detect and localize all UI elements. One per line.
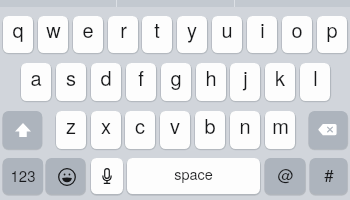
button[interactable]: Shift [3, 111, 42, 149]
button[interactable]: c [125, 111, 155, 149]
staticText: a [30, 63, 42, 92]
staticText: r [120, 16, 127, 44]
button[interactable]: d [91, 63, 121, 101]
staticText: b [204, 111, 216, 140]
button[interactable]: j [230, 63, 260, 101]
button[interactable]: 123 [3, 158, 43, 194]
staticText: c [135, 111, 145, 140]
staticText: y [187, 16, 197, 44]
staticText: u [221, 16, 233, 44]
button[interactable]: x [91, 111, 121, 149]
button[interactable]: w [38, 16, 68, 53]
staticText: v [170, 111, 180, 140]
staticText: 123 [10, 165, 36, 186]
staticText: z [66, 111, 76, 140]
button[interactable]: v [160, 111, 190, 149]
button[interactable]: u [212, 16, 242, 53]
button[interactable]: o [282, 16, 312, 53]
button[interactable]: e [73, 16, 103, 53]
staticText: n [239, 111, 251, 140]
button[interactable]: q [3, 16, 33, 53]
staticText: t [154, 16, 160, 44]
staticText: d [100, 63, 112, 92]
staticText: m [272, 111, 289, 140]
button[interactable]: f [126, 63, 156, 101]
button[interactable]: h [196, 63, 226, 101]
button[interactable]: b [195, 111, 225, 149]
button[interactable]: y [177, 16, 207, 53]
button[interactable]: Dictate [91, 158, 123, 194]
staticText: l [313, 63, 318, 92]
button[interactable]: l [300, 63, 330, 101]
button[interactable]: g [161, 63, 191, 101]
staticText: k [275, 63, 285, 92]
button[interactable]: r [108, 16, 138, 53]
staticText: x [101, 111, 111, 140]
button[interactable]: Emoji keyboard [46, 158, 85, 194]
staticText: space [174, 163, 213, 184]
staticText: s [66, 63, 76, 92]
button[interactable]: space [127, 158, 260, 194]
button[interactable]: @ [265, 158, 305, 194]
staticText: h [205, 63, 217, 92]
staticText: p [326, 16, 338, 44]
button[interactable]: a [21, 63, 51, 101]
staticText: q [12, 16, 24, 44]
button[interactable]: m [265, 111, 295, 149]
staticText: g [170, 63, 182, 92]
staticText: e [82, 16, 94, 44]
button[interactable]: Backspace [309, 111, 347, 149]
staticText: f [138, 63, 144, 92]
button[interactable]: p [317, 16, 347, 53]
staticText: w [46, 16, 61, 44]
staticText: @ [277, 163, 294, 186]
button[interactable]: z [56, 111, 86, 149]
button[interactable]: # [310, 158, 347, 194]
button[interactable]: i [247, 16, 277, 53]
button[interactable]: t [142, 16, 172, 53]
staticText: o [291, 16, 303, 44]
button[interactable]: n [230, 111, 260, 149]
staticText: j [243, 63, 248, 92]
button[interactable]: s [56, 63, 86, 101]
button[interactable]: k [265, 63, 295, 101]
staticText: i [260, 16, 265, 44]
staticText: # [324, 162, 334, 186]
